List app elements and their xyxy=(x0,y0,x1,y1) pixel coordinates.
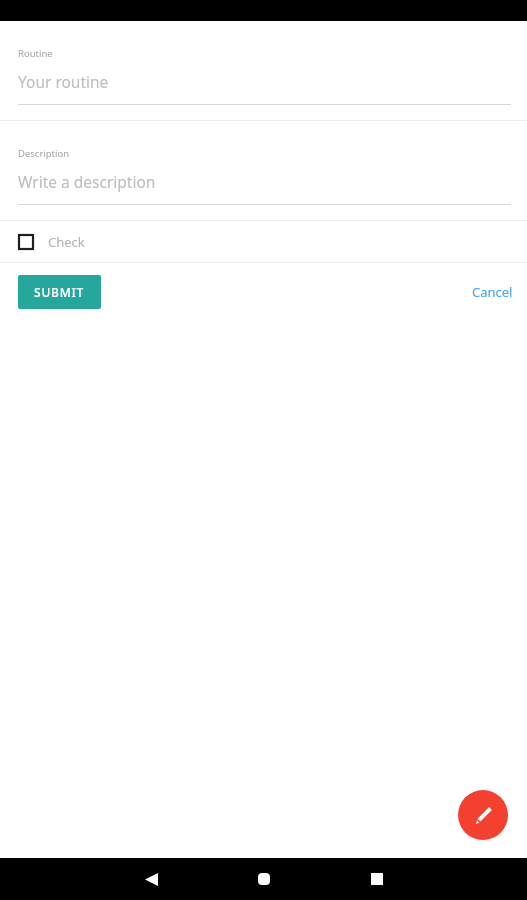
staticText: Routine xyxy=(18,47,53,60)
button[interactable]: Back xyxy=(135,863,167,895)
staticText: Check xyxy=(48,233,85,251)
button[interactable]: Description xyxy=(0,121,527,220)
button[interactable]: Home xyxy=(248,863,280,895)
staticText: Cancel xyxy=(472,283,513,301)
button[interactable]: Routine xyxy=(0,21,527,120)
button[interactable]: Edit xyxy=(458,790,508,840)
staticText: Description xyxy=(18,147,70,160)
button[interactable]: SUBMIT xyxy=(18,275,101,309)
button[interactable]: Check xyxy=(0,221,527,262)
staticText: Write a description xyxy=(18,171,156,192)
button[interactable]: Recent apps xyxy=(361,863,393,895)
staticText: Your routine xyxy=(18,71,109,92)
button[interactable]: Cancel xyxy=(458,273,527,311)
staticText: SUBMIT xyxy=(34,284,85,300)
